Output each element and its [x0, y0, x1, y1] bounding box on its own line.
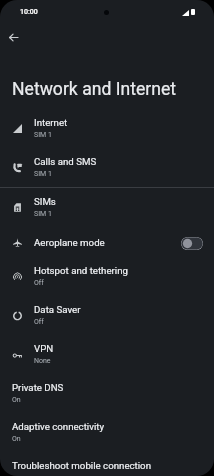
staticText: Off — [34, 318, 44, 326]
button[interactable]: Back — [3, 27, 24, 48]
button[interactable]: Troubleshoot mobile connection — [0, 452, 214, 476]
staticText: None — [34, 357, 51, 365]
staticText: SIM 1 — [34, 170, 52, 178]
staticText: On — [12, 396, 21, 404]
staticText: SIM 1 — [34, 131, 52, 139]
staticText: Calls and SMS — [34, 156, 97, 167]
button[interactable]: Adaptive connectivity — [0, 413, 214, 452]
button[interactable]: Aeroplane mode — [0, 227, 214, 257]
staticText: Off — [34, 279, 44, 287]
staticText: Network and Internet — [12, 79, 177, 100]
staticText: Internet — [34, 117, 68, 128]
button[interactable]: VPN — [0, 335, 214, 374]
staticText: Hotspot and tethering — [34, 265, 129, 276]
button[interactable]: Aeroplane mode toggle — [181, 237, 203, 250]
staticText: Data Saver — [34, 304, 81, 315]
staticText: Aeroplane mode — [34, 237, 105, 248]
button[interactable]: Internet — [0, 109, 214, 148]
staticText: Private DNS — [12, 382, 64, 393]
button[interactable]: SIMs — [0, 188, 214, 227]
button[interactable]: Calls and SMS — [0, 148, 214, 187]
button[interactable]: Private DNS — [0, 374, 214, 413]
button[interactable]: Data Saver — [0, 296, 214, 335]
staticText: Adaptive connectivity — [12, 421, 105, 432]
staticText: On — [12, 435, 21, 443]
staticText: SIMs — [34, 196, 56, 207]
staticText: SIM 1 — [34, 210, 52, 218]
button[interactable]: Hotspot and tethering — [0, 257, 214, 296]
staticText: Troubleshoot mobile connection — [12, 460, 151, 471]
staticText: VPN — [34, 343, 54, 354]
staticText: 10:00 — [20, 8, 38, 16]
